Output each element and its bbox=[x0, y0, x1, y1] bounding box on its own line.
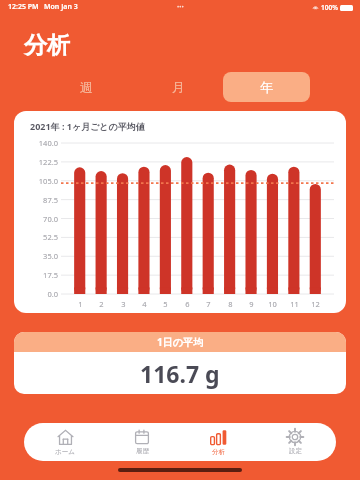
staticText: ••• bbox=[177, 3, 184, 11]
button[interactable]: 2021年 : 1ヶ月ごとの平均値 bbox=[14, 111, 346, 313]
staticText: 2021年 : 1ヶ月ごとの平均値 bbox=[30, 120, 145, 132]
staticText: 35.0 bbox=[43, 251, 58, 261]
staticText: 17.5 bbox=[43, 270, 58, 280]
button[interactable]: ホーム bbox=[30, 423, 100, 461]
button[interactable]: 履歴 bbox=[107, 423, 177, 461]
staticText: 140.0 bbox=[38, 138, 58, 148]
staticText: 3 bbox=[121, 299, 126, 309]
staticText: 116.7 g bbox=[140, 358, 220, 389]
button[interactable]: 週 bbox=[42, 72, 130, 102]
staticText: 1日の平均 bbox=[157, 335, 203, 349]
staticText: 0.0 bbox=[47, 289, 58, 299]
staticText: 5 bbox=[163, 299, 168, 309]
staticText: 設定 bbox=[289, 447, 302, 455]
staticText: 年 bbox=[260, 79, 273, 95]
button[interactable]: 設定 bbox=[260, 423, 330, 461]
button[interactable]: 分析 bbox=[183, 423, 253, 461]
button[interactable]: 年 bbox=[223, 72, 310, 102]
staticText: ホーム bbox=[55, 448, 75, 456]
staticText: 100% bbox=[321, 3, 338, 12]
staticText: 11 bbox=[290, 299, 299, 309]
staticText: 月 bbox=[172, 79, 185, 95]
staticText: 7 bbox=[206, 299, 211, 309]
staticText: 9 bbox=[249, 299, 254, 309]
staticText: 分析 bbox=[24, 31, 70, 60]
staticText: 122.5 bbox=[38, 157, 58, 167]
staticText: 分析 bbox=[212, 448, 225, 456]
staticText: 4 bbox=[142, 299, 147, 309]
staticText: 12 bbox=[311, 299, 320, 309]
staticText: 1 bbox=[78, 299, 83, 309]
button[interactable]: 1日の平均 bbox=[14, 332, 346, 394]
staticText: 2 bbox=[99, 299, 104, 309]
staticText: 週 bbox=[80, 79, 93, 95]
staticText: 105.0 bbox=[38, 176, 58, 186]
staticText: 87.5 bbox=[43, 195, 58, 205]
staticText: 52.5 bbox=[43, 232, 58, 242]
staticText: 6 bbox=[185, 299, 190, 309]
button[interactable]: 月 bbox=[136, 72, 220, 102]
staticText: 履歴 bbox=[136, 447, 149, 455]
staticText: 10 bbox=[268, 299, 277, 309]
staticText: 12:25 PM Mon Jan 3 bbox=[8, 2, 78, 12]
staticText: 8 bbox=[228, 299, 233, 309]
staticText: 70.0 bbox=[43, 214, 58, 224]
